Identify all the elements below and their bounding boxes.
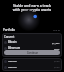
staticText: Stable and earn a track with your crypto…	[1, 3, 63, 12]
button[interactable]: Continue	[4, 50, 60, 55]
staticText: Portfolio	[3, 28, 15, 32]
staticText: Bitcoin	[8, 40, 17, 44]
button[interactable]: Ethereum	[4, 46, 60, 50]
staticText: Continue	[27, 51, 38, 54]
button[interactable]: Bitcoin	[4, 40, 60, 44]
staticText: See all	[53, 28, 61, 31]
staticText: Transfer	[8, 66, 17, 69]
staticText: Convert	[4, 35, 15, 39]
staticText: $842	[54, 47, 60, 50]
staticText: $0.00	[54, 66, 60, 69]
button[interactable]: Transfer	[2, 64, 62, 71]
staticText: $1,204	[52, 41, 60, 44]
staticText: $0.00	[54, 60, 60, 63]
staticText: Ethereum	[8, 46, 21, 50]
button[interactable]: Transfer	[2, 58, 62, 64]
button[interactable]: See all	[53, 28, 61, 31]
staticText: Transfer	[8, 60, 17, 63]
